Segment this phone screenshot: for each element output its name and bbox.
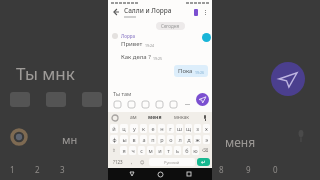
staticText: ⇧ <box>112 148 116 153</box>
staticText: ш <box>177 125 182 132</box>
staticText: меня <box>225 134 256 150</box>
staticText: п <box>151 136 155 143</box>
button[interactable]: Attachment 0 <box>113 100 122 109</box>
staticText: ☺ <box>140 160 145 165</box>
staticText: Сегодня <box>161 23 180 29</box>
staticText: м <box>148 147 153 154</box>
staticText: ю <box>193 147 198 154</box>
button[interactable]: Recents <box>184 169 194 179</box>
button[interactable]: х <box>203 124 210 133</box>
staticText: 3 <box>60 164 65 175</box>
button[interactable]: Space <box>149 158 195 166</box>
button[interactable]: я <box>120 146 127 155</box>
button[interactable]: е <box>149 124 156 133</box>
staticText: ⌫ <box>202 148 209 153</box>
button[interactable]: в <box>130 135 138 144</box>
staticText: у <box>133 125 136 132</box>
button[interactable]: Back <box>127 169 137 179</box>
button[interactable]: Shift <box>110 146 118 155</box>
button[interactable]: Салли и Лорра <box>124 6 191 18</box>
button[interactable]: меня <box>148 114 162 121</box>
staticText: б <box>185 147 189 154</box>
button[interactable]: Attachment 1 <box>127 100 136 109</box>
button[interactable]: ам <box>130 114 137 121</box>
staticText: ↵ <box>201 159 206 165</box>
button[interactable]: р <box>158 135 165 144</box>
button[interactable]: Attachment 2 <box>141 100 150 109</box>
button[interactable]: л <box>176 135 183 144</box>
button[interactable]: Symbols <box>110 158 125 166</box>
staticText: Лорра <box>121 33 135 39</box>
button[interactable]: ф <box>110 135 118 144</box>
staticText: с <box>140 147 143 154</box>
staticText: ?123 <box>113 159 123 165</box>
staticText: к <box>142 125 145 132</box>
button[interactable]: Emoji <box>138 158 147 166</box>
button[interactable]: о <box>167 135 174 144</box>
button[interactable]: Voice input <box>201 114 209 122</box>
button[interactable]: а <box>140 135 147 144</box>
button[interactable]: ы <box>120 135 128 144</box>
button[interactable]: Back <box>111 7 121 17</box>
button[interactable]: Ты там <box>113 90 132 97</box>
button[interactable]: ш <box>176 124 183 133</box>
button[interactable]: ж <box>194 135 201 144</box>
staticText: ж <box>195 136 200 143</box>
button[interactable]: ц <box>120 124 128 133</box>
button[interactable]: ч <box>129 146 136 155</box>
staticText: ц <box>122 125 126 132</box>
button[interactable]: Google <box>111 114 119 122</box>
button[interactable]: т <box>165 146 172 155</box>
staticText: ь <box>176 147 179 154</box>
staticText: о <box>169 136 173 143</box>
button[interactable]: б <box>183 146 190 155</box>
button[interactable]: ь <box>174 146 181 155</box>
staticText: , <box>131 159 133 165</box>
staticText: р <box>160 136 164 143</box>
button[interactable]: Attachment 4 <box>169 100 178 109</box>
staticText: я <box>122 147 126 154</box>
staticText: и <box>158 147 162 154</box>
staticText: а <box>142 136 146 143</box>
staticText: ч <box>131 147 135 154</box>
staticText: з <box>196 125 199 132</box>
button[interactable]: Attachment 3 <box>155 100 164 109</box>
staticText: 1 <box>10 164 15 175</box>
staticText: Как дела ? <box>121 53 151 61</box>
button[interactable]: Send <box>196 93 209 106</box>
staticText: г <box>169 125 172 132</box>
button[interactable]: й <box>110 124 118 133</box>
button[interactable]: Avatar <box>202 33 211 42</box>
button[interactable]: э <box>203 135 210 144</box>
button[interactable]: Backspace <box>201 146 210 155</box>
button[interactable]: с <box>138 146 145 155</box>
button[interactable]: и <box>156 146 163 155</box>
button[interactable]: н <box>158 124 165 133</box>
button[interactable]: к <box>140 124 147 133</box>
button[interactable]: з <box>194 124 201 133</box>
button[interactable]: More options <box>201 8 209 16</box>
staticText: Привет <box>121 40 143 48</box>
staticText: д <box>187 136 191 143</box>
button[interactable]: ю <box>192 146 199 155</box>
button[interactable]: Home <box>155 169 165 179</box>
button[interactable]: щ <box>185 124 192 133</box>
staticText: в <box>132 136 136 143</box>
button[interactable]: мнкак <box>174 114 189 121</box>
button[interactable]: п <box>149 135 156 144</box>
button[interactable]: у <box>130 124 138 133</box>
button[interactable]: Call <box>191 7 201 17</box>
button[interactable]: Enter <box>197 158 210 166</box>
button[interactable]: Пока <box>174 65 208 77</box>
button[interactable]: д <box>185 135 192 144</box>
staticText: й <box>112 125 116 132</box>
staticText: е <box>151 125 155 132</box>
staticText: 2 <box>35 164 40 175</box>
button[interactable]: г <box>167 124 174 133</box>
staticText: ф <box>112 136 117 143</box>
staticText: х <box>205 125 208 132</box>
staticText: 0 <box>273 164 278 175</box>
button[interactable]: м <box>147 146 154 155</box>
button[interactable]: Comma <box>127 158 136 166</box>
staticText: 19:25 <box>153 56 162 61</box>
